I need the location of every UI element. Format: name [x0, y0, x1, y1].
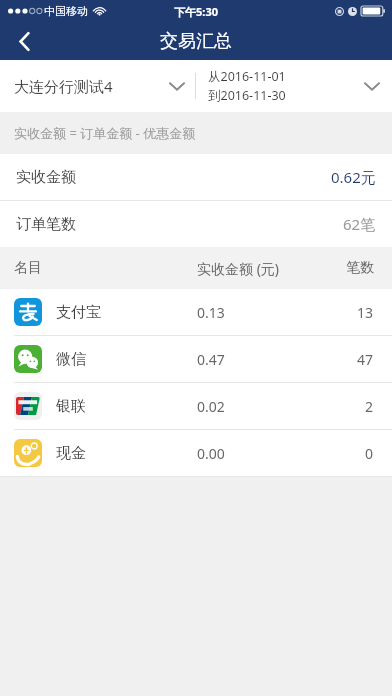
- staticText: 笔数: [346, 259, 374, 277]
- staticText: 13: [357, 303, 374, 322]
- button[interactable]: 从2016-11-01: [196, 60, 392, 112]
- staticText: 下午5:30: [174, 4, 218, 19]
- staticText: 0.47: [197, 350, 225, 369]
- staticText: 名目: [14, 259, 42, 277]
- staticText: 银联: [56, 397, 86, 416]
- staticText: 62笔: [343, 214, 376, 234]
- button[interactable]: 微信: [0, 336, 392, 382]
- button[interactable]: 实收金额: [0, 154, 392, 200]
- staticText: 到2016-11-30: [208, 87, 286, 104]
- staticText: 现金: [56, 444, 86, 463]
- staticText: 47: [357, 350, 374, 369]
- staticText: 大连分行测试4: [14, 76, 113, 96]
- staticText: 支付宝: [56, 303, 101, 322]
- staticText: 0.00: [197, 444, 225, 463]
- staticText: 0.02: [197, 397, 225, 416]
- staticText: 从2016-11-01: [208, 68, 286, 85]
- staticText: 微信: [56, 350, 86, 369]
- button[interactable]: 现金: [0, 430, 392, 476]
- staticText: 实收金额 = 订单金额 - 优惠金额: [14, 124, 196, 142]
- staticText: 订单笔数: [16, 215, 76, 234]
- staticText: 2: [365, 397, 374, 416]
- staticText: 0.13: [197, 303, 225, 322]
- staticText: 中国移动: [44, 4, 88, 18]
- button[interactable]: 订单笔数: [0, 201, 392, 247]
- button[interactable]: 返回: [0, 22, 48, 60]
- staticText: 实收金额 (元): [197, 259, 280, 278]
- staticText: 0: [365, 444, 374, 463]
- staticText: 实收金额: [16, 168, 76, 187]
- button[interactable]: 银联: [0, 383, 392, 429]
- button[interactable]: 支付宝: [0, 289, 392, 335]
- staticText: 交易汇总: [160, 30, 232, 53]
- button[interactable]: 大连分行测试4: [0, 60, 195, 112]
- staticText: 0.62元: [331, 167, 376, 187]
